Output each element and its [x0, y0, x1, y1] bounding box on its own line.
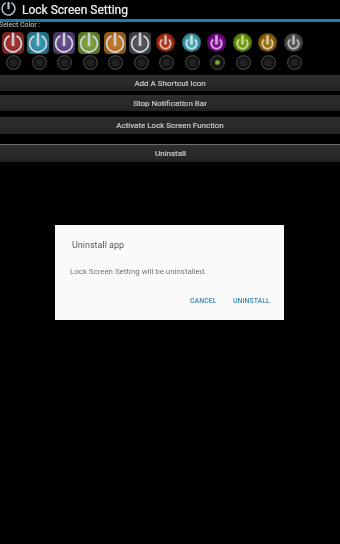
- staticText: UNINSTALL: [233, 297, 270, 305]
- button[interactable]: Select colour 6: [128, 55, 154, 70]
- button[interactable]: Select colour 1: [0, 55, 26, 70]
- button[interactable]: Uninstall: [0, 145, 340, 162]
- button[interactable]: Colour 10: [233, 33, 252, 52]
- button[interactable]: Colour 2: [27, 32, 49, 54]
- button[interactable]: Colour 8: [182, 33, 201, 52]
- staticText: Select Color :: [0, 21, 41, 29]
- button[interactable]: Select colour 2: [26, 55, 52, 70]
- button[interactable]: Select colour 3: [51, 55, 77, 70]
- other: App icon: [2, 2, 15, 15]
- staticText: CANCEL: [190, 297, 217, 305]
- button[interactable]: Colour 7: [156, 33, 175, 52]
- button[interactable]: Select colour 5: [102, 55, 128, 70]
- button[interactable]: Colour 3: [53, 32, 75, 54]
- button[interactable]: Select colour 11: [255, 55, 281, 70]
- button[interactable]: UNINSTALL: [228, 293, 275, 309]
- staticText: Lock Screen Setting: [22, 3, 128, 17]
- button[interactable]: Colour 9: [207, 33, 226, 52]
- button[interactable]: Colour 11: [258, 33, 277, 52]
- button[interactable]: CANCEL: [185, 293, 222, 309]
- button[interactable]: Select colour 12: [281, 55, 307, 70]
- button[interactable]: Colour 1: [2, 32, 24, 54]
- button[interactable]: Select colour 4: [77, 55, 103, 70]
- button[interactable]: Select colour 8: [179, 55, 205, 70]
- staticText: Add A Shortcut Icon: [134, 79, 206, 88]
- button[interactable]: Select colour 10: [230, 55, 256, 70]
- staticText: Activate Lock Screen Function: [116, 121, 224, 130]
- button[interactable]: Colour 12: [284, 33, 303, 52]
- staticText: Uninstall app: [72, 240, 125, 251]
- staticText: Uninstall: [155, 149, 186, 158]
- button[interactable]: Stop Notification Bar: [0, 95, 340, 111]
- button[interactable]: Colour 6: [129, 32, 151, 54]
- button[interactable]: Add A Shortcut Icon: [0, 75, 340, 91]
- button[interactable]: Colour 4: [78, 32, 100, 54]
- staticText: Lock Screen Setting will be uninstalled.: [70, 267, 207, 276]
- button[interactable]: Activate Lock Screen Function: [0, 117, 340, 134]
- button[interactable]: Select colour 9: [204, 55, 230, 70]
- button[interactable]: Colour 5: [104, 32, 126, 54]
- staticText: Stop Notification Bar: [133, 99, 207, 108]
- button[interactable]: Select colour 7: [153, 55, 179, 70]
